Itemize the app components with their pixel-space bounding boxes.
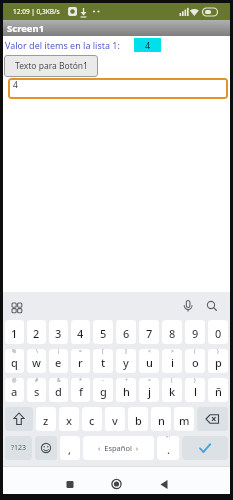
button[interactable]: 3 bbox=[49, 320, 68, 344]
button[interactable]: * bbox=[71, 378, 90, 402]
button[interactable]: # bbox=[27, 378, 46, 402]
button[interactable]: ñ bbox=[208, 378, 228, 402]
button[interactable]: 4 bbox=[71, 320, 90, 344]
button[interactable]: " ' bbox=[157, 436, 179, 460]
button[interactable]: \ bbox=[27, 349, 46, 373]
staticText: a bbox=[11, 384, 18, 399]
button[interactable]: m bbox=[174, 407, 194, 431]
staticText: l bbox=[194, 384, 197, 399]
button[interactable]: z bbox=[36, 407, 56, 431]
staticText: ñ bbox=[215, 384, 222, 399]
staticText: [ bbox=[102, 349, 104, 355]
staticText: \ bbox=[36, 349, 38, 355]
staticText: j bbox=[148, 384, 151, 399]
staticText: i bbox=[171, 355, 174, 370]
staticText: p bbox=[215, 355, 222, 370]
staticText: 7 bbox=[146, 326, 153, 341]
button[interactable]: 1 bbox=[5, 320, 24, 344]
button[interactable]: ?123 bbox=[5, 436, 32, 460]
button[interactable]: 8 bbox=[162, 320, 182, 344]
button[interactable] bbox=[5, 407, 33, 431]
button[interactable]: % bbox=[5, 349, 24, 373]
staticText: | bbox=[57, 349, 60, 355]
button[interactable] bbox=[35, 436, 57, 460]
button[interactable] bbox=[182, 436, 228, 460]
staticText: 1 bbox=[11, 326, 18, 341]
staticText: 5 bbox=[100, 326, 107, 341]
staticText: r bbox=[78, 355, 83, 370]
button[interactable]: 4 bbox=[134, 38, 161, 52]
button[interactable]: = bbox=[71, 349, 90, 373]
button[interactable]: ( bbox=[185, 349, 205, 373]
staticText: ) bbox=[217, 349, 219, 355]
staticText: ‹ Español › bbox=[98, 443, 139, 453]
staticText: ( bbox=[171, 378, 173, 384]
staticText: c bbox=[89, 413, 95, 428]
button[interactable]: ) bbox=[208, 349, 228, 373]
staticText: @ bbox=[12, 378, 17, 384]
staticText: ] bbox=[125, 349, 127, 355]
button[interactable]: < bbox=[139, 349, 159, 373]
staticText: = bbox=[148, 378, 151, 384]
staticText: > bbox=[171, 349, 174, 355]
button[interactable]: n bbox=[151, 407, 171, 431]
staticText: g bbox=[100, 384, 107, 399]
button[interactable]: 2 bbox=[27, 320, 46, 344]
button[interactable]: ( bbox=[162, 378, 182, 402]
staticText: # bbox=[35, 378, 39, 384]
staticText: Texto para Botón1 bbox=[15, 60, 88, 72]
staticText: u bbox=[146, 355, 153, 370]
button[interactable]: | bbox=[49, 349, 68, 373]
button[interactable]: @ bbox=[5, 378, 24, 402]
staticText: m bbox=[179, 413, 190, 428]
staticText: = bbox=[79, 349, 82, 355]
button[interactable]: - bbox=[93, 378, 113, 402]
button[interactable]: b bbox=[128, 407, 148, 431]
staticText: 3 bbox=[55, 326, 62, 341]
button[interactable]: & bbox=[49, 378, 68, 402]
staticText: 4 bbox=[77, 326, 84, 341]
button[interactable]: 4 bbox=[8, 78, 228, 99]
button[interactable]: ) bbox=[185, 378, 205, 402]
button[interactable]: + bbox=[116, 378, 136, 402]
button[interactable]: 7 bbox=[139, 320, 159, 344]
button[interactable]: x bbox=[59, 407, 79, 431]
staticText: . bbox=[167, 442, 170, 457]
button[interactable]: Texto para Botón1 bbox=[4, 55, 98, 77]
staticText: 0 bbox=[215, 326, 222, 341]
staticText: ) bbox=[194, 378, 196, 384]
staticText: f bbox=[79, 384, 83, 399]
staticText: h bbox=[123, 384, 130, 399]
staticText: t bbox=[101, 355, 106, 370]
button[interactable]: ] bbox=[116, 349, 136, 373]
staticText: ( bbox=[194, 349, 196, 355]
staticText: y bbox=[123, 355, 129, 370]
button[interactable]: v bbox=[105, 407, 125, 431]
staticText: e bbox=[55, 355, 62, 370]
button[interactable]: 6 bbox=[116, 320, 136, 344]
staticText: " ' bbox=[166, 436, 171, 442]
button[interactable]: 5 bbox=[93, 320, 113, 344]
staticText: & bbox=[57, 378, 61, 384]
staticText: k bbox=[169, 384, 176, 399]
button[interactable]: = bbox=[139, 378, 159, 402]
button[interactable]: , bbox=[60, 436, 80, 460]
button[interactable]: 9 bbox=[185, 320, 205, 344]
staticText: q bbox=[11, 355, 18, 370]
button[interactable]: > bbox=[162, 349, 182, 373]
staticText: b bbox=[135, 413, 142, 428]
staticText: % bbox=[12, 349, 17, 355]
staticText: s bbox=[34, 384, 40, 399]
staticText: z bbox=[43, 413, 49, 428]
staticText: 12:09 | 0,3KB/s bbox=[13, 7, 60, 16]
button[interactable]: ‹ Español › bbox=[83, 436, 154, 460]
staticText: o bbox=[192, 355, 199, 370]
staticText: n bbox=[158, 413, 165, 428]
staticText: 2 bbox=[33, 326, 40, 341]
staticText: + bbox=[125, 378, 128, 384]
button[interactable]: 0 bbox=[208, 320, 228, 344]
button[interactable] bbox=[197, 407, 228, 431]
staticText: 4 bbox=[13, 79, 18, 91]
button[interactable]: c bbox=[82, 407, 102, 431]
button[interactable]: [ bbox=[93, 349, 113, 373]
